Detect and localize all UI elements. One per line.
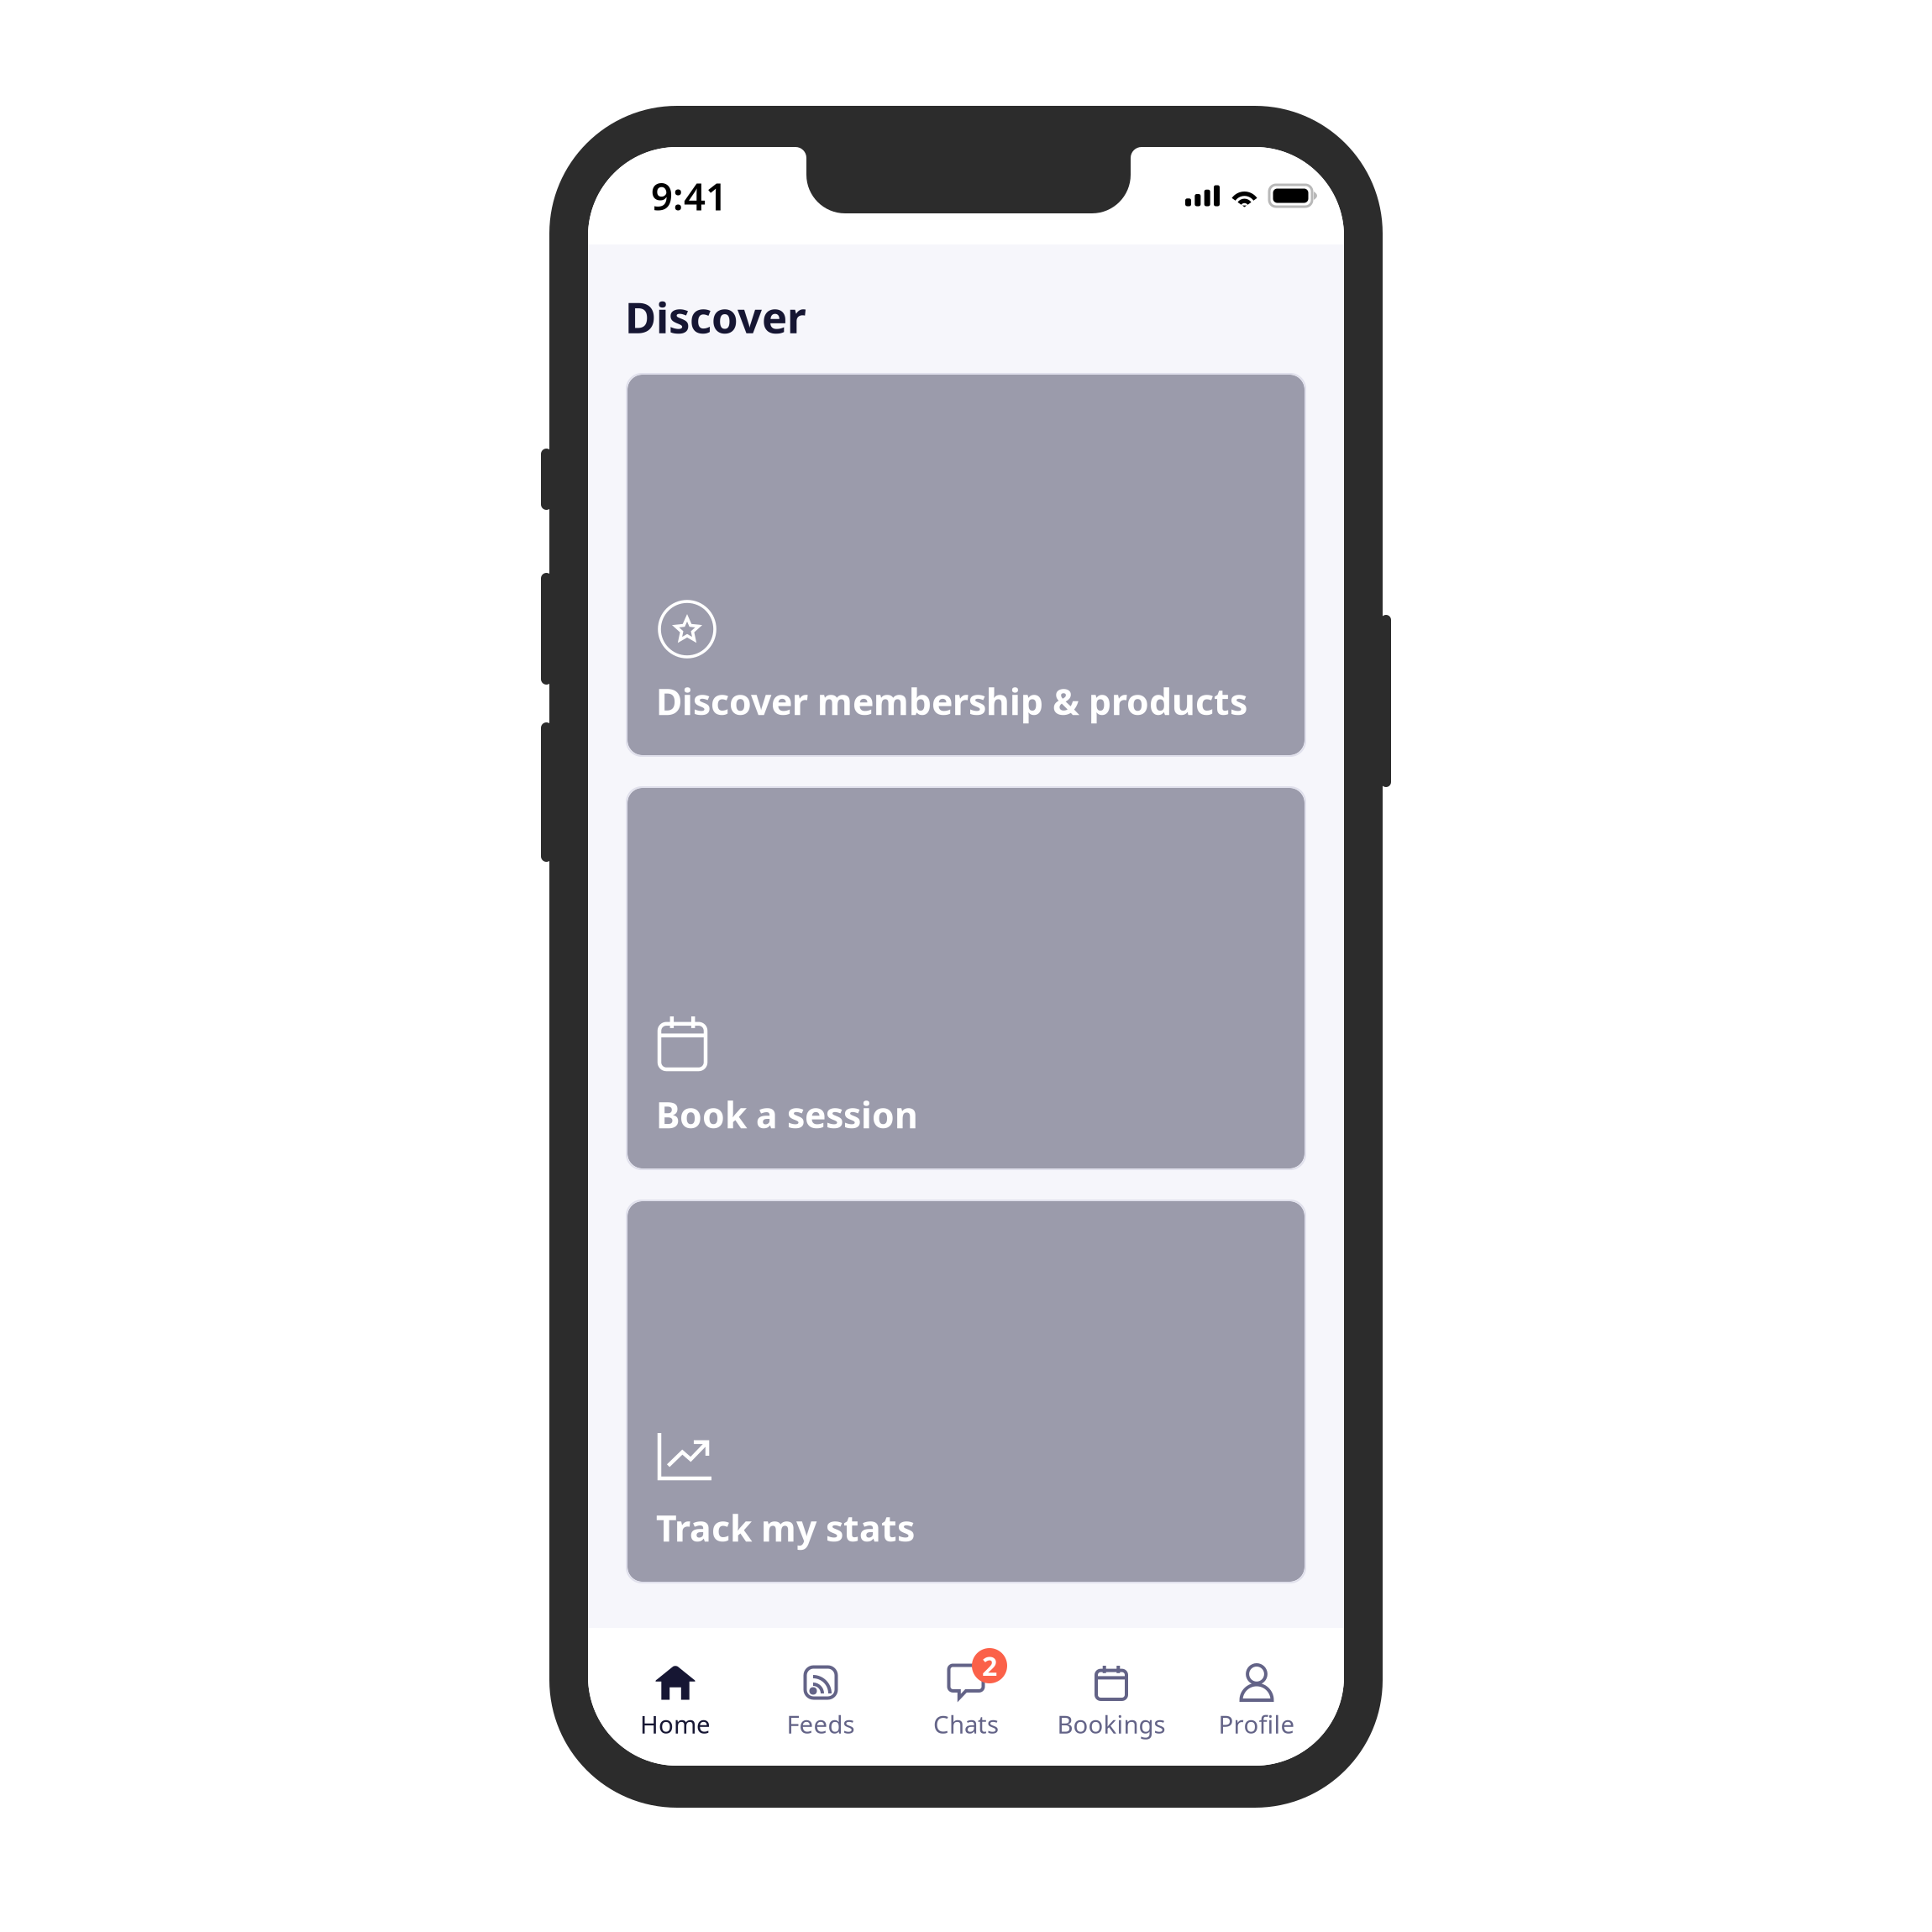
staticText: Bookings bbox=[1057, 1708, 1165, 1740]
staticText: Profile bbox=[1218, 1708, 1295, 1740]
button[interactable]: Discover membership & products bbox=[627, 375, 1305, 755]
staticText: Chats bbox=[933, 1708, 999, 1740]
button[interactable]: Home bbox=[603, 1628, 748, 1766]
button[interactable]: Profile bbox=[1184, 1628, 1329, 1766]
button[interactable]: Book a session bbox=[627, 788, 1305, 1168]
staticText: 2 bbox=[982, 1648, 997, 1684]
staticText: 9:41 bbox=[651, 170, 727, 221]
staticText: Discover membership & products bbox=[656, 677, 1247, 725]
staticText: Feeds bbox=[787, 1708, 855, 1740]
staticText: Discover bbox=[625, 288, 806, 345]
staticText: Track my stats bbox=[656, 1504, 915, 1551]
staticText: Home bbox=[640, 1708, 711, 1740]
button[interactable]: 2 bbox=[893, 1628, 1039, 1766]
button[interactable]: Track my stats bbox=[627, 1201, 1305, 1582]
staticText: Book a session bbox=[656, 1091, 918, 1138]
button[interactable]: Bookings bbox=[1039, 1628, 1184, 1766]
button[interactable]: Feeds bbox=[748, 1628, 893, 1766]
